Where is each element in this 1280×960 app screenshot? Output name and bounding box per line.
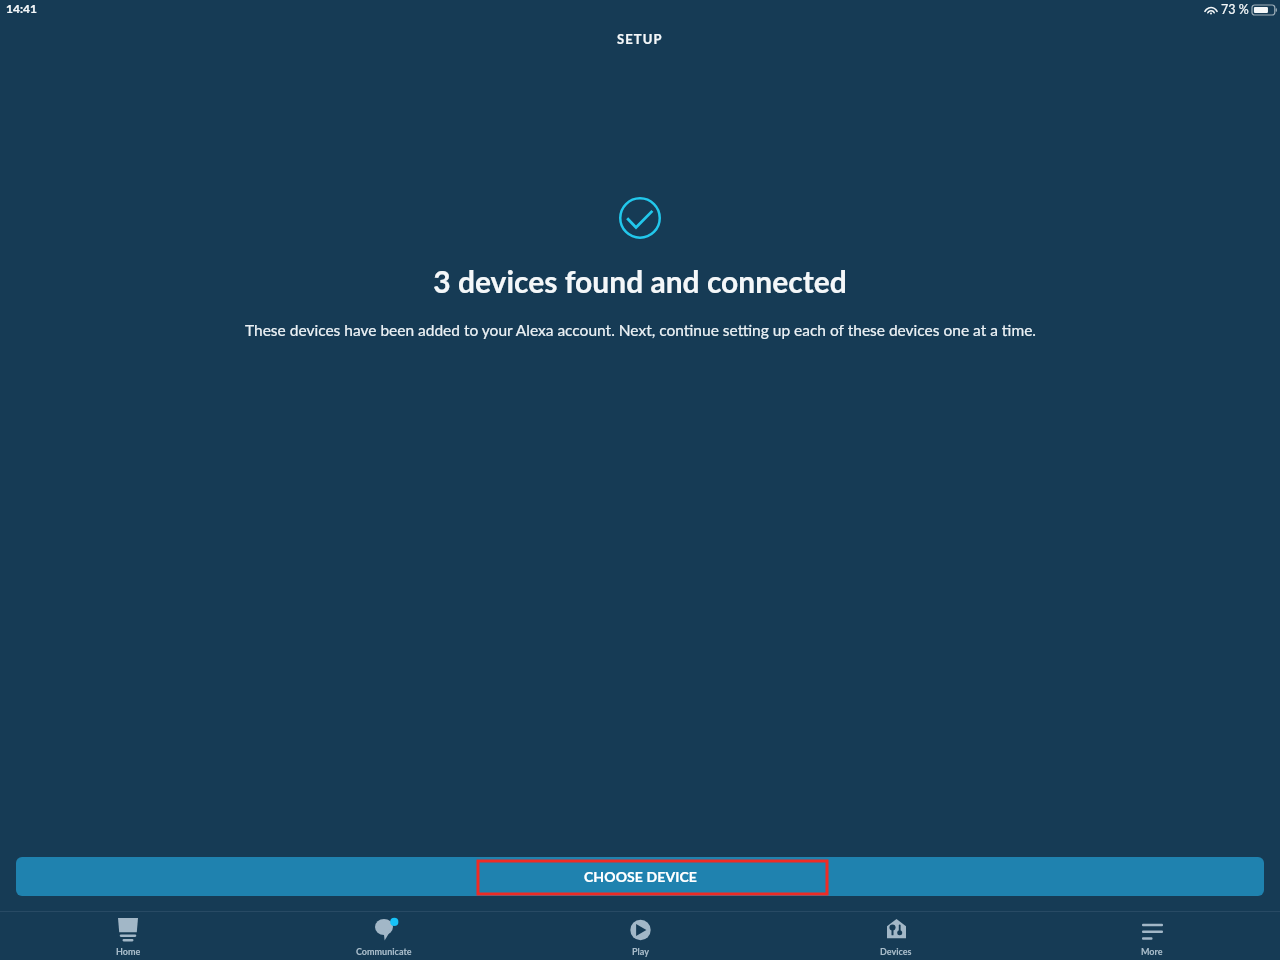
- button[interactable]: More: [1024, 912, 1280, 960]
- staticText: Communicate: [356, 946, 412, 957]
- staticText: Devices: [880, 946, 912, 957]
- other: Battery 73 percent: [1252, 5, 1277, 15]
- staticText: More: [1141, 946, 1163, 957]
- button[interactable]: Home: [0, 912, 256, 960]
- button[interactable]: Communicate: [256, 912, 512, 960]
- staticText: 14:41: [6, 1, 37, 15]
- staticText: Home: [116, 946, 141, 957]
- staticText: SETUP: [617, 31, 663, 47]
- other: Wi-Fi connected: [1204, 5, 1218, 15]
- staticText: Play: [632, 946, 649, 957]
- button[interactable]: Devices: [768, 912, 1024, 960]
- staticText: These devices have been added to your Al…: [245, 321, 1036, 340]
- staticText: 73 %: [1221, 2, 1249, 17]
- staticText: CHOOSE DEVICE: [584, 868, 697, 885]
- staticText: 3 devices found and connected: [433, 263, 847, 299]
- button[interactable]: Play: [512, 912, 768, 960]
- button[interactable]: CHOOSE DEVICE: [16, 857, 1264, 896]
- other: Success: [619, 197, 661, 239]
